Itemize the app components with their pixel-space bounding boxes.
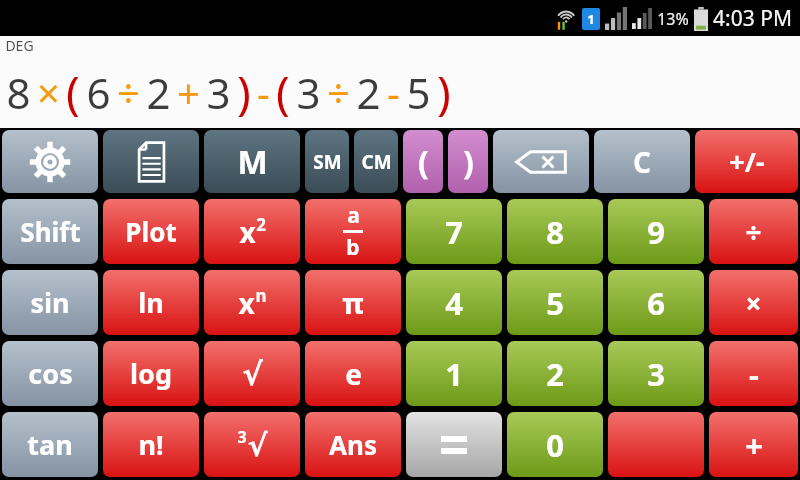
staticText: 3 [206,64,231,121]
staticText: 2 [146,64,171,121]
staticText: 2 [356,64,381,121]
button[interactable]: 5 [507,270,603,335]
staticText: π [342,283,364,322]
button[interactable]: cos [2,341,98,406]
button[interactable]: + [709,412,798,477]
button[interactable]: tan [2,412,98,477]
button[interactable]: Ans [305,412,401,477]
button[interactable]: SM [305,130,349,193]
staticText: ( [66,61,80,124]
button[interactable]: 6 [608,270,704,335]
staticText: SM [313,149,342,175]
staticText: 1 [587,10,595,28]
staticText: ÷ [117,65,140,119]
button[interactable]: ln [103,270,199,335]
staticText: n [255,284,267,307]
button[interactable]: Equals [406,412,502,477]
staticText: 3 [237,426,247,448]
staticText: √ [242,356,263,392]
button[interactable]: n! [103,412,199,477]
button[interactable]: 1 [406,341,502,406]
staticText: DEG [5,36,34,55]
button[interactable]: sin [2,270,98,335]
button[interactable]: Cube root [204,412,300,477]
staticText: ) [437,61,451,124]
button[interactable]: Decimal point [608,412,704,477]
button[interactable]: 0 [507,412,603,477]
button[interactable]: History [103,130,199,193]
button[interactable]: 4 [406,270,502,335]
button[interactable]: ÷ [709,199,798,264]
staticText: e [345,355,362,393]
button[interactable]: x to the power n [204,270,300,335]
button[interactable]: Fraction [305,199,401,264]
staticText: M [237,140,268,184]
staticText: 3 [647,353,665,395]
staticText: ) [237,61,251,124]
staticText: 3 [296,64,321,121]
button[interactable]: 3 [608,341,704,406]
button[interactable]: π [305,270,401,335]
staticText: +/- [729,143,765,180]
staticText: log [130,355,172,392]
button[interactable]: C [594,130,690,193]
staticText: sin [30,284,70,321]
staticText: Shift [20,214,81,249]
staticText: - [387,65,400,119]
button[interactable]: e [305,341,401,406]
staticText: 5 [406,64,431,121]
button[interactable]: 2 [507,341,603,406]
button[interactable]: M [204,130,300,193]
staticText: - [749,353,759,395]
button[interactable]: Backspace [493,130,589,193]
staticText: Plot [125,214,177,249]
button[interactable]: +/- [695,130,798,193]
staticText: 1 [445,353,463,395]
staticText: 5 [546,282,564,324]
staticText: x [239,213,256,251]
staticText: 0 [546,424,564,466]
staticText: ) [463,140,474,184]
staticText: a [347,201,360,230]
staticText: 7 [445,211,463,253]
staticText: + [177,65,200,119]
button[interactable]: √ [204,341,300,406]
staticText: - [257,65,270,119]
staticText: 2 [546,353,564,395]
button[interactable]: Settings [2,130,98,193]
button[interactable]: 9 [608,199,704,264]
staticText: ( [276,61,290,124]
staticText: 9 [647,211,665,253]
staticText: n! [138,426,164,463]
staticText: 8 [6,64,31,121]
button[interactable]: log [103,341,199,406]
staticText: 2 [256,213,266,236]
button[interactable]: CM [354,130,398,193]
button[interactable]: ( [403,130,443,193]
staticText: 6 [86,64,111,121]
staticText: ( [418,140,429,184]
staticText: × [37,65,60,119]
staticText: ÷ [745,213,762,251]
button[interactable]: - [709,341,798,406]
button[interactable]: x to the power 2 [204,199,300,264]
staticText: cos [28,355,73,392]
button[interactable]: 7 [406,199,502,264]
button[interactable]: × [709,270,798,335]
staticText: C [633,143,651,181]
staticText: Ans [329,427,377,462]
staticText: tan [27,426,73,463]
button[interactable]: Plot [103,199,199,264]
button[interactable]: Shift [2,199,98,264]
staticText: 4 [445,282,463,324]
staticText: CM [361,149,392,175]
staticText: 4:03 PM [713,4,792,33]
staticText: b [346,233,360,262]
staticText: ln [138,284,164,321]
staticText: 13% [657,8,689,30]
button[interactable]: ) [448,130,488,193]
staticText: × [745,284,762,322]
staticText: x [238,284,255,322]
staticText: √ [247,428,268,463]
button[interactable]: 8 [507,199,603,264]
